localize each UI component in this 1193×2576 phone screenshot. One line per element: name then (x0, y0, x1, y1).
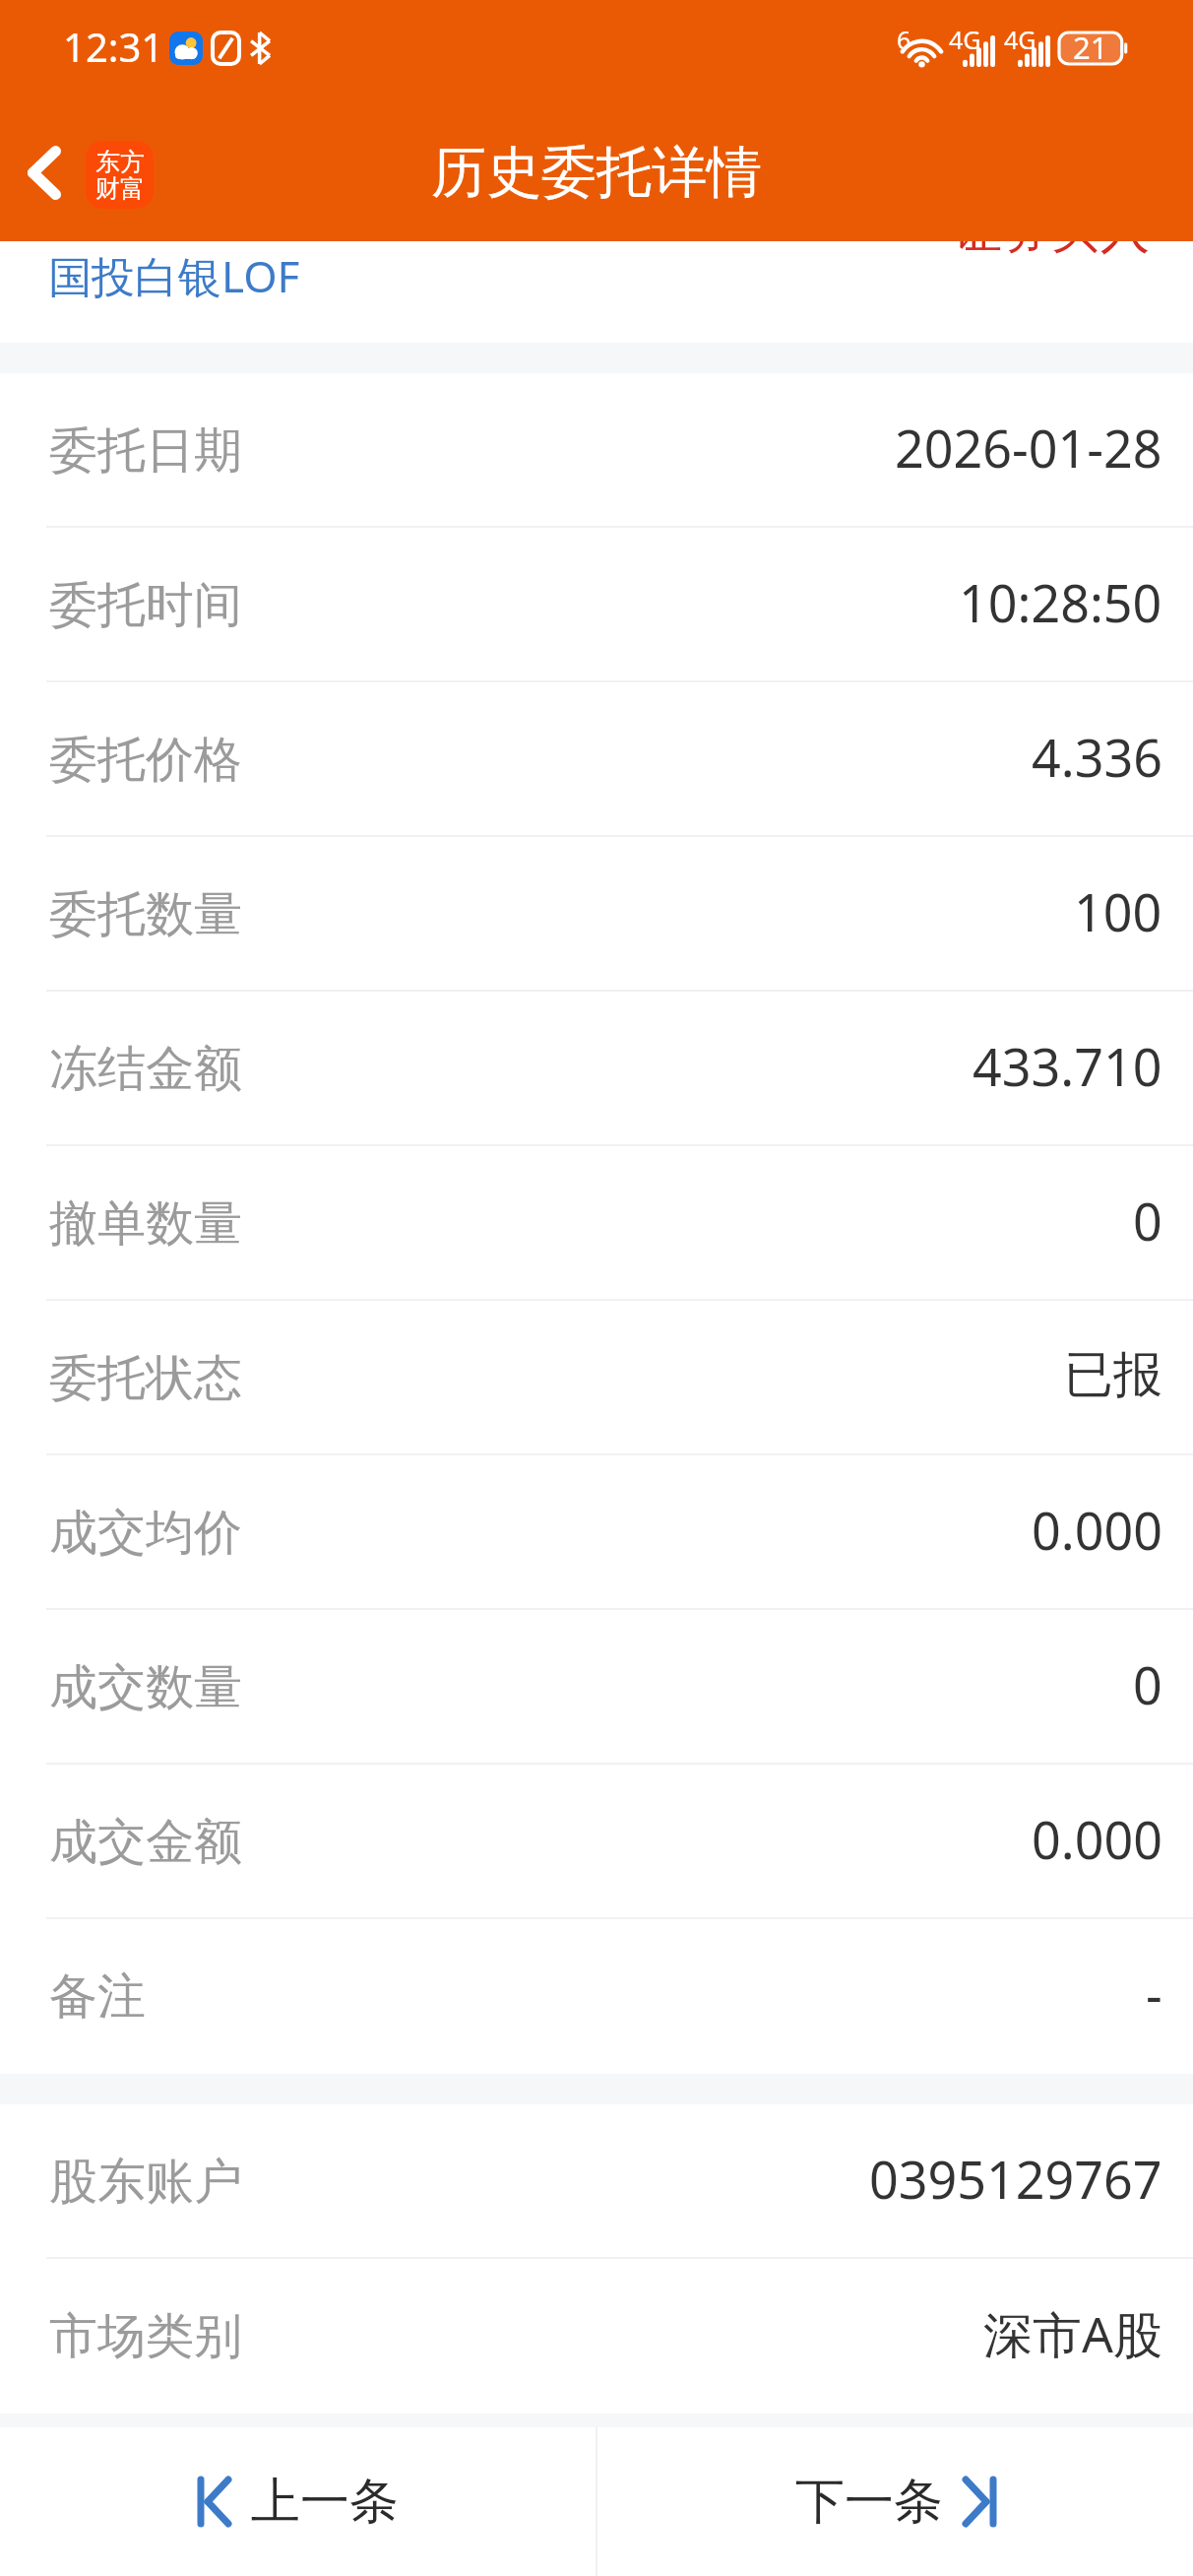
staticText: 国投白银LOF (48, 246, 300, 305)
staticText: 21 (1073, 27, 1108, 68)
staticText: 433.710 (973, 1031, 1162, 1101)
staticText: 成交均价 (49, 1503, 242, 1564)
button[interactable]: 国投白银LOF (0, 241, 1193, 343)
button[interactable]: 撤单数量 (0, 1146, 1193, 1301)
staticText: 深市A股 (983, 2300, 1162, 2367)
staticText: 委托数量 (49, 884, 242, 945)
staticText: 备注 (49, 1966, 146, 2028)
staticText: 100 (1074, 876, 1162, 946)
staticText: - (1146, 1959, 1162, 2029)
staticText: 市场类别 (49, 2306, 242, 2367)
button[interactable]: East Money (86, 141, 154, 209)
staticText: 历史委托详情 (431, 138, 762, 208)
staticText: 0395129767 (869, 2144, 1162, 2214)
staticText: 成交数量 (49, 1657, 242, 1718)
staticText: 委托时间 (49, 575, 242, 636)
staticText: 委托价格 (49, 730, 242, 791)
staticText: 成交金额 (49, 1812, 242, 1873)
button[interactable]: 市场类别 (0, 2259, 1193, 2414)
button[interactable]: 委托数量 (0, 837, 1193, 992)
staticText: 12:31 (63, 20, 164, 73)
staticText: 0 (1133, 1649, 1162, 1719)
staticText: 0.000 (1032, 1804, 1162, 1874)
button[interactable]: 冻结金额 (0, 992, 1193, 1146)
button[interactable]: 委托日期 (0, 373, 1193, 528)
staticText: 0.000 (1032, 1495, 1162, 1565)
button[interactable]: 成交数量 (0, 1610, 1193, 1765)
staticText: 6 (897, 23, 911, 56)
button[interactable]: 委托价格 (0, 682, 1193, 837)
button[interactable]: 股东账户 (0, 2104, 1193, 2259)
staticText: 东方 (95, 147, 145, 177)
staticText: 撤单数量 (49, 1193, 242, 1255)
staticText: 0 (1133, 1186, 1162, 1256)
staticText: 委托日期 (49, 420, 242, 482)
staticText: 冻结金额 (49, 1039, 242, 1100)
button[interactable]: 上一条 (0, 2427, 596, 2576)
staticText: 4G (1004, 23, 1036, 56)
button[interactable]: 委托时间 (0, 528, 1193, 682)
staticText: 财富 (95, 173, 145, 204)
button[interactable]: 下一条 (597, 2427, 1193, 2576)
staticText: 证券买入 (953, 200, 1150, 262)
staticText: 上一条 (251, 2471, 399, 2533)
staticText: 下一条 (795, 2471, 943, 2533)
staticText: 2026-01-28 (895, 413, 1162, 483)
staticText: 股东账户 (49, 2152, 242, 2213)
staticText: 已报 (1064, 1344, 1162, 1406)
button[interactable]: Back (0, 104, 88, 241)
staticText: 4G (949, 23, 981, 56)
staticText: 10:28:50 (959, 567, 1162, 637)
button[interactable]: 成交金额 (0, 1765, 1193, 1919)
button[interactable]: 成交均价 (0, 1455, 1193, 1610)
staticText: 委托状态 (49, 1348, 242, 1409)
staticText: 4.336 (1032, 722, 1162, 792)
button[interactable]: 备注 (0, 1919, 1193, 2074)
button[interactable]: 委托状态 (0, 1301, 1193, 1455)
